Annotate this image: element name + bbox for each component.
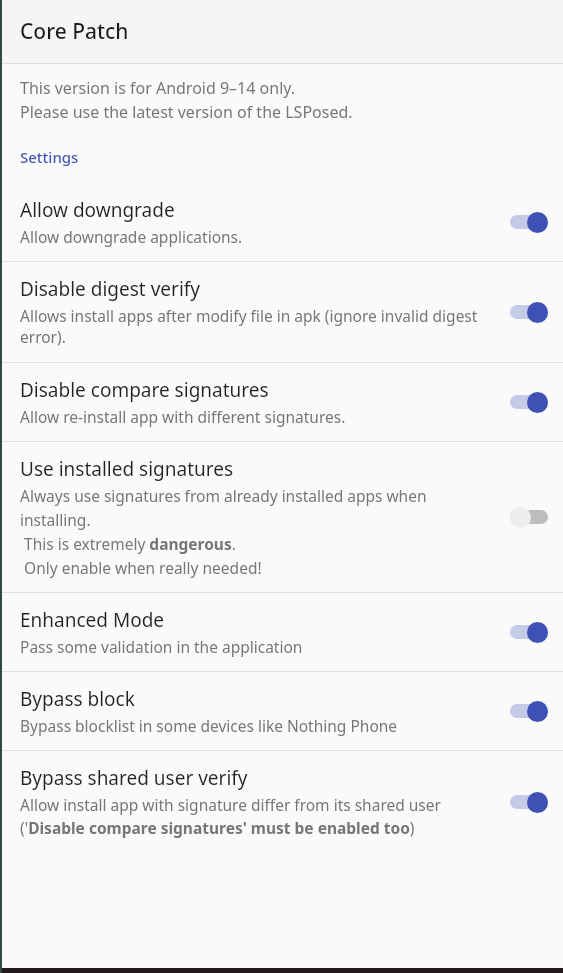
button[interactable]: Use installed signatures: [0, 442, 563, 592]
staticText: Allow re-install app with different sign…: [20, 406, 346, 427]
staticText: Core Patch: [20, 17, 129, 46]
button[interactable]: [501, 784, 557, 820]
staticText: Always use signatures from already insta…: [20, 485, 493, 578]
staticText: Disable digest verify: [20, 276, 201, 302]
button[interactable]: [501, 614, 557, 650]
button[interactable]: Allow downgrade: [0, 183, 563, 261]
staticText: Pass some validation in the application: [20, 636, 303, 657]
button[interactable]: Disable digest verify: [0, 262, 563, 362]
button[interactable]: Disable compare signatures: [0, 363, 563, 441]
staticText: Allows install apps after modify file in…: [20, 305, 493, 348]
staticText: Disable compare signatures: [20, 377, 269, 403]
button[interactable]: [501, 499, 557, 535]
staticText: Bypass block: [20, 686, 135, 712]
staticText: Allow downgrade: [20, 197, 175, 223]
staticText: Allow install app with signature differ …: [20, 794, 493, 839]
button[interactable]: Bypass shared user verify: [0, 751, 563, 853]
button[interactable]: [501, 204, 557, 240]
button[interactable]: [501, 294, 557, 330]
staticText: Enhanced Mode: [20, 607, 165, 633]
button[interactable]: [501, 693, 557, 729]
staticText: Bypass shared user verify: [20, 765, 248, 791]
button[interactable]: Enhanced Mode: [0, 593, 563, 671]
staticText: This version is for Android 9–14 only. P…: [20, 77, 353, 123]
staticText: Use installed signatures: [20, 456, 234, 482]
staticText: Settings: [20, 147, 79, 167]
button[interactable]: [501, 384, 557, 420]
staticText: Allow downgrade applications.: [20, 226, 243, 247]
staticText: Bypass blocklist in some devices like No…: [20, 715, 398, 736]
button[interactable]: Bypass block: [0, 672, 563, 750]
